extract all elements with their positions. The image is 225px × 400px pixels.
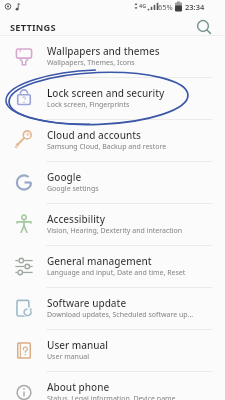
staticText: Google settings	[47, 184, 99, 194]
button[interactable]: Lock screen and security	[0, 78, 225, 120]
staticText: Google	[47, 170, 82, 184]
staticText: 23:34	[185, 2, 205, 12]
button[interactable]: Cloud and accounts	[0, 120, 225, 162]
staticText: About phone	[47, 380, 110, 394]
staticText: Lock screen, Fingerprints	[47, 100, 130, 110]
button[interactable]: User manual	[0, 330, 225, 372]
button[interactable]: General management	[0, 246, 225, 288]
staticText: Cloud and accounts	[47, 128, 141, 142]
staticText: SETTINGS	[10, 21, 56, 34]
staticText: Vision, Hearing, Dexterity and interacti…	[47, 226, 183, 236]
staticText: 4G	[139, 2, 147, 9]
staticText: General management	[47, 254, 152, 268]
staticText: 65%	[158, 2, 173, 12]
staticText: Wallpapers and themes	[47, 44, 160, 58]
staticText: Download updates, Scheduled software up.…	[47, 310, 194, 320]
button[interactable]: Software update	[0, 288, 225, 330]
staticText: Language and input, Date and time, Reset	[47, 268, 186, 278]
staticText: Wallpapers, Themes, Icons	[47, 58, 135, 68]
staticText: Status, Legal information, Device name	[47, 394, 176, 400]
button[interactable]	[195, 13, 225, 36]
button[interactable]: Accessibility	[0, 204, 225, 246]
staticText: Software update	[47, 296, 127, 310]
button[interactable]: About phone	[0, 372, 225, 400]
staticText: Samsung Cloud, Backup and restore	[47, 142, 167, 152]
button[interactable]: Wallpapers and themes	[0, 36, 225, 78]
staticText: User manual	[47, 352, 89, 362]
staticText: Lock screen and security	[47, 86, 165, 100]
staticText: User manual	[47, 338, 108, 352]
staticText: Accessibility	[47, 212, 105, 226]
button[interactable]: Google	[0, 162, 225, 204]
